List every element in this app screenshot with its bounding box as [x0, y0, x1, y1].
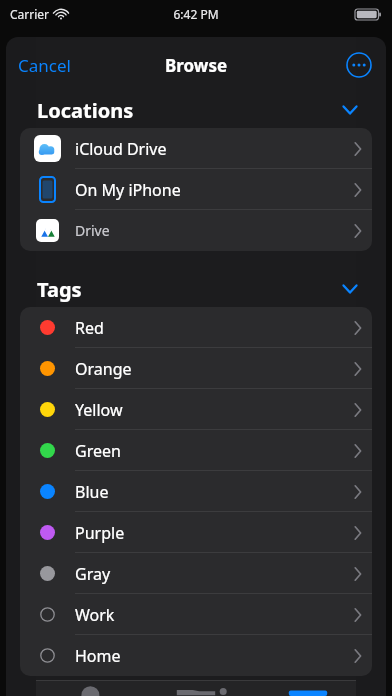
button[interactable]: Collapse Locations [338, 98, 362, 122]
staticText: Locations [37, 97, 134, 124]
staticText: Work [75, 604, 115, 626]
staticText: Purple [75, 522, 125, 544]
button[interactable]: Purple [20, 512, 372, 553]
staticText: Green [75, 440, 121, 462]
staticText: Blue [75, 481, 109, 503]
staticText: Red [75, 317, 104, 339]
button[interactable]: Cancel [12, 50, 77, 81]
button[interactable]: Home [20, 635, 372, 676]
staticText: On My iPhone [75, 179, 181, 201]
staticText: Drive [75, 221, 110, 240]
button[interactable]: iCloud Drive [20, 128, 372, 169]
staticText: 6:42 PM [0, 6, 392, 22]
staticText: iCloud Drive [75, 138, 167, 160]
button[interactable]: Work [20, 594, 372, 635]
staticText: Home [75, 645, 121, 667]
button[interactable]: Drive [20, 210, 372, 251]
button[interactable]: Green [20, 430, 372, 471]
button[interactable]: Blue [20, 471, 372, 512]
button[interactable]: On My iPhone [20, 169, 372, 210]
staticText: Browse [165, 54, 228, 77]
staticText: Yellow [75, 399, 123, 421]
button[interactable]: Red [20, 307, 372, 348]
staticText: Gray [75, 563, 111, 585]
staticText: Orange [75, 358, 132, 380]
button[interactable]: Collapse Tags [338, 277, 362, 301]
staticText: Carrier [10, 6, 50, 22]
button[interactable]: Gray [20, 553, 372, 594]
button[interactable]: Yellow [20, 389, 372, 430]
button[interactable]: More options [346, 52, 372, 78]
button[interactable]: Orange [20, 348, 372, 389]
staticText: Cancel [18, 54, 71, 77]
staticText: Tags [37, 276, 82, 303]
